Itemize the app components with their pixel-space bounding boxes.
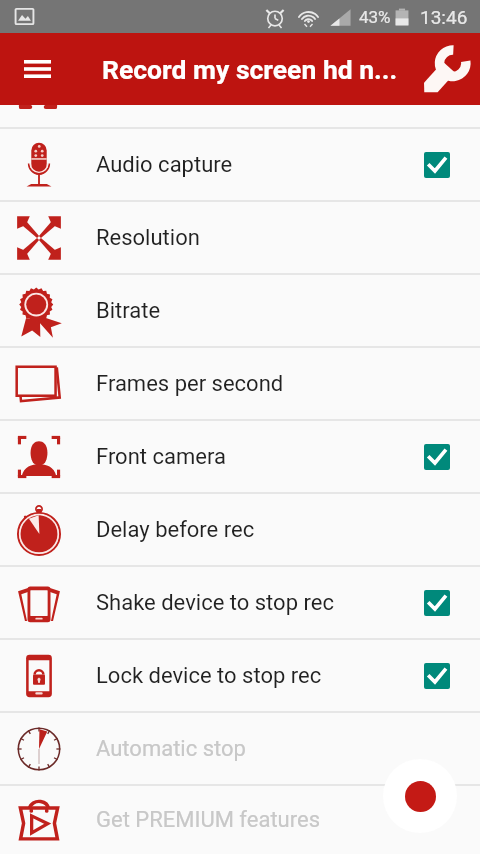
staticText: Get PREMIUM features bbox=[96, 807, 320, 833]
button[interactable]: Open navigation menu bbox=[9, 41, 65, 97]
staticText: 43% bbox=[359, 7, 391, 27]
staticText: Delay before rec bbox=[96, 517, 255, 543]
button[interactable]: Front camera bbox=[0, 421, 480, 492]
button[interactable]: Toggle Lock device to stop rec bbox=[424, 663, 450, 689]
staticText: Record my screen hd n... bbox=[102, 54, 398, 85]
button[interactable]: Lock device to stop rec bbox=[0, 640, 480, 711]
button[interactable]: Settings bbox=[412, 37, 476, 101]
button[interactable]: Toggle Front camera bbox=[424, 444, 450, 470]
button[interactable]: Shake device to stop rec bbox=[0, 567, 480, 638]
button[interactable]: Toggle Audio capture bbox=[424, 152, 450, 178]
staticText: 13:46 bbox=[420, 6, 468, 28]
button[interactable]: Bitrate bbox=[0, 275, 480, 346]
button[interactable]: Start recording bbox=[383, 759, 457, 833]
button[interactable] bbox=[0, 105, 480, 127]
staticText: Front camera bbox=[96, 444, 226, 470]
button[interactable]: Toggle Shake device to stop rec bbox=[424, 590, 450, 616]
button[interactable]: Delay before rec bbox=[0, 494, 480, 565]
staticText: Lock device to stop rec bbox=[96, 663, 322, 689]
button[interactable]: Frames per second bbox=[0, 348, 480, 419]
button[interactable]: Resolution bbox=[0, 202, 480, 273]
button[interactable]: Get PREMIUM features bbox=[0, 786, 480, 854]
staticText: Resolution bbox=[96, 225, 200, 251]
staticText: Automatic stop bbox=[96, 736, 246, 762]
staticText: Bitrate bbox=[96, 298, 161, 324]
button[interactable]: Audio capture bbox=[0, 129, 480, 200]
button[interactable]: Automatic stop bbox=[0, 713, 480, 784]
staticText: Audio capture bbox=[96, 152, 233, 178]
staticText: Shake device to stop rec bbox=[96, 590, 334, 616]
staticText: Frames per second bbox=[96, 371, 284, 397]
